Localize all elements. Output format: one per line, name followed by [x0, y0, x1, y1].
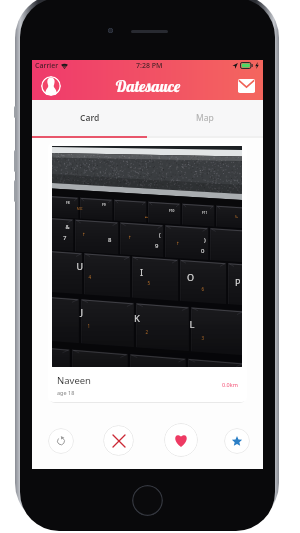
button[interactable]: Super like	[224, 428, 250, 454]
staticText: Naveen	[57, 374, 91, 387]
staticText: 0.0km	[222, 381, 238, 388]
button[interactable]: Rewind	[48, 428, 74, 454]
button[interactable]: Profile	[41, 76, 61, 96]
button[interactable]: Card	[32, 100, 147, 136]
button[interactable]: Naveen	[48, 143, 247, 402]
button[interactable]: Nope	[103, 425, 134, 456]
staticText: 7:28 PM	[136, 61, 163, 71]
staticText: Map	[196, 112, 214, 124]
button[interactable]: Map	[147, 100, 263, 136]
button[interactable]: Messages	[237, 78, 255, 94]
staticText: Card	[80, 112, 100, 124]
button[interactable]: Like	[164, 423, 198, 457]
staticText: Datesauce	[115, 76, 181, 96]
staticText: Carrier	[35, 61, 59, 71]
staticText: age 18	[57, 389, 75, 396]
